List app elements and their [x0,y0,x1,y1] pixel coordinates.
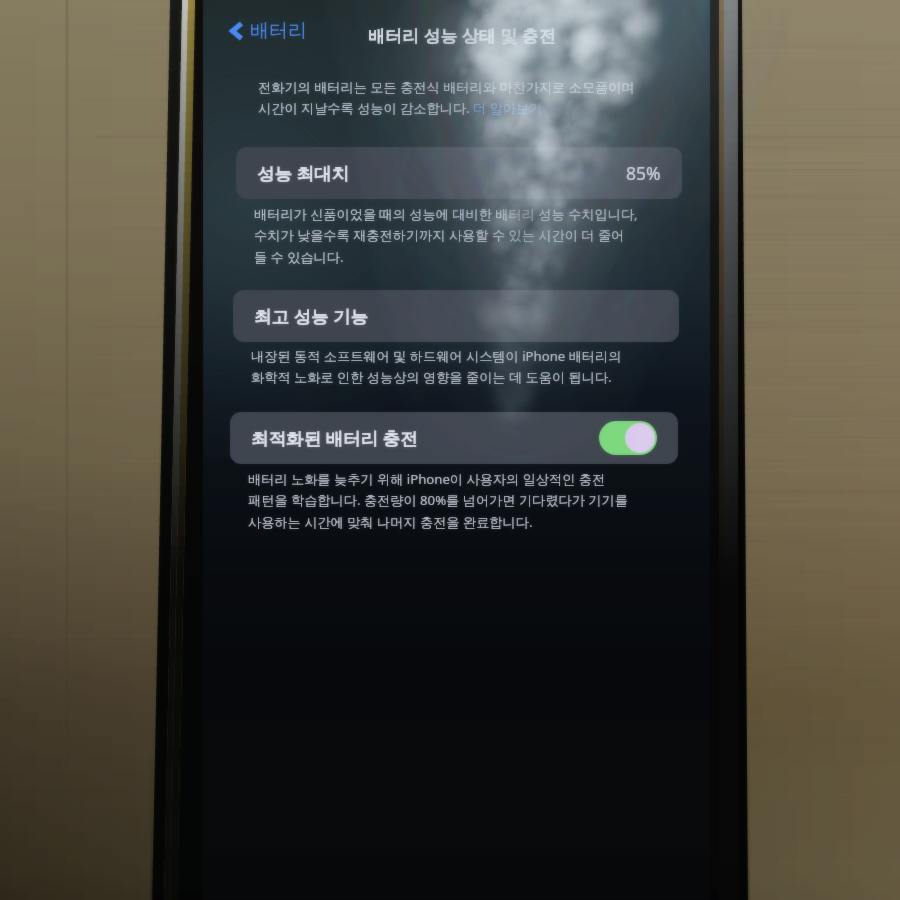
staticText: 85% [626,161,661,185]
staticText: 전화기의 배터리는 모든 충전식 배터리와 마찬가지로 소모품이며 시간이 지날… [258,78,635,117]
staticText: 배터리가 신품이었을 때의 성능에 대비한 배터리 성능 수치입니다, 수치가 … [254,205,638,266]
staticText: 내장된 동적 소프트웨어 및 하드웨어 시스템이 iPhone 배터리의 화학적… [251,347,622,386]
button[interactable]: 최고 성능 기능 [233,290,679,342]
button[interactable]: 최적화된 배터리 충전 [230,412,678,464]
staticText: 성능 최대치 [257,161,350,185]
button[interactable]: 최고 성능 기능 [233,290,679,342]
staticText: 배터리 성능 상태 및 충전 [368,24,556,47]
button[interactable]: 최적화된 배터리 충전 켜기 [599,421,657,455]
staticText: 성능 최대치 [257,161,350,185]
staticText: 85% [626,161,661,185]
button[interactable]: 배터리 [225,13,312,49]
staticText: 배터리 [250,19,307,43]
button[interactable]: 최적화된 배터리 충전 켜기 [599,421,657,455]
staticText: 배터리 노화를 늦추기 위해 iPhone이 사용자의 일상적인 충전 패턴을 … [248,470,628,531]
staticText: 최고 성능 기능 [254,304,369,328]
staticText: 최고 성능 기능 [254,304,369,328]
staticText: 최적화된 배터리 충전 [251,426,418,450]
button[interactable]: 배터리 [225,13,312,49]
staticText: 배터리 성능 상태 및 충전 [368,24,556,47]
staticText: 배터리가 신품이었을 때의 성능에 대비한 배터리 성능 수치입니다, 수치가 … [254,205,638,266]
button[interactable]: 성능 최대치 [236,147,682,199]
staticText: 전화기의 배터리는 모든 충전식 배터리와 마찬가지로 소모품이며 시간이 지날… [258,78,635,117]
staticText: 배터리 [250,19,307,43]
button[interactable]: 최적화된 배터리 충전 [230,412,678,464]
staticText: 배터리 노화를 늦추기 위해 iPhone이 사용자의 일상적인 충전 패턴을 … [248,470,628,531]
staticText: 내장된 동적 소프트웨어 및 하드웨어 시스템이 iPhone 배터리의 화학적… [251,347,622,386]
staticText: 최적화된 배터리 충전 [251,426,418,450]
button[interactable]: 성능 최대치 [236,147,682,199]
